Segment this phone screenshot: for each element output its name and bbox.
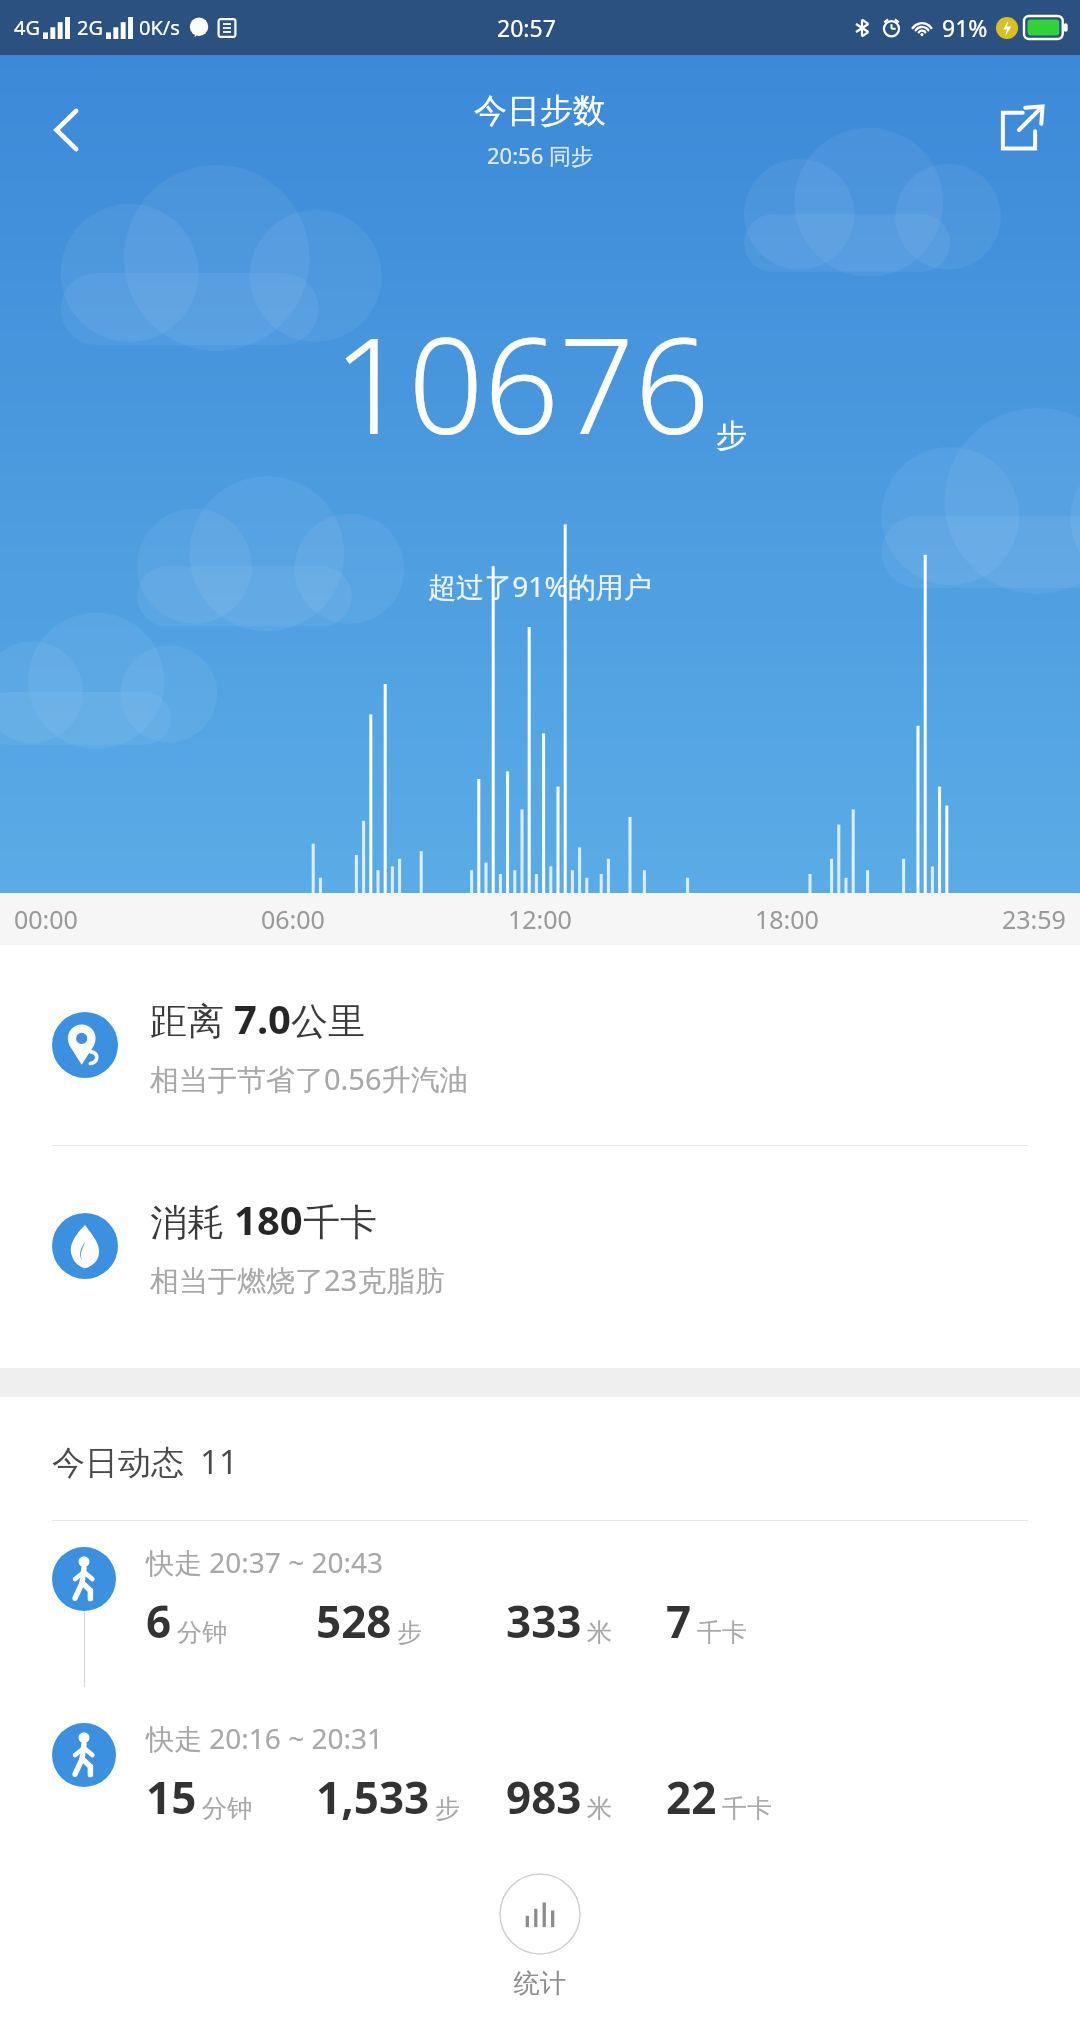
staticText: 20:57 <box>497 12 556 43</box>
staticText: 528 <box>316 1591 392 1651</box>
staticText: 相当于燃烧了23克脂肪 <box>150 1260 445 1300</box>
staticText: 10676 <box>333 293 710 473</box>
staticText: 步 <box>716 416 747 455</box>
staticText: 步 <box>435 1793 460 1824</box>
staticText: 00:00 <box>14 902 78 936</box>
staticText: 180 <box>234 1192 303 1246</box>
staticText: 超过了91%的用户 <box>428 567 652 605</box>
staticText: 7.0 <box>234 991 291 1045</box>
staticText: 20:56 同步 <box>487 140 593 170</box>
staticText: 4G <box>14 14 40 41</box>
staticText: 统计 <box>514 1967 566 2000</box>
staticText: 333 <box>506 1591 582 1651</box>
staticText: 22 <box>666 1767 717 1827</box>
staticText: 步 <box>397 1617 422 1648</box>
button[interactable]: 距离 <box>0 945 1080 1145</box>
staticText: 快走 20:37 ~ 20:43 <box>146 1543 383 1581</box>
button[interactable]: 统计 <box>440 1851 640 2021</box>
staticText: 23:59 <box>1002 902 1066 936</box>
staticText: 0K/s <box>139 14 180 41</box>
staticText: 分钟 <box>202 1793 252 1824</box>
staticText: 米 <box>587 1793 612 1824</box>
staticText: 18:00 <box>755 902 819 936</box>
staticText: 千卡 <box>303 1199 377 1246</box>
staticText: 12:00 <box>508 902 572 936</box>
staticText: 1,533 <box>316 1767 430 1827</box>
staticText: 7 <box>666 1591 692 1651</box>
button[interactable]: 消耗 <box>0 1146 1080 1346</box>
button[interactable]: 快走 20:37 ~ 20:43 <box>0 1521 1080 1697</box>
staticText: 983 <box>506 1767 582 1827</box>
staticText: 今日步数 <box>474 90 606 132</box>
staticText: 消耗 <box>150 1195 234 1246</box>
staticText: 千卡 <box>722 1793 772 1824</box>
staticText: 相当于节省了0.56升汽油 <box>150 1059 469 1099</box>
staticText: 千卡 <box>697 1617 747 1648</box>
staticText: 快走 20:16 ~ 20:31 <box>146 1719 383 1757</box>
staticText: 2G <box>77 14 103 41</box>
staticText: 分钟 <box>177 1617 227 1648</box>
button[interactable]: Back <box>34 96 102 164</box>
staticText: 公里 <box>291 998 365 1045</box>
staticText: 6 <box>146 1591 172 1651</box>
staticText: 11 <box>200 1439 238 1484</box>
staticText: 91% <box>942 12 988 43</box>
staticText: 距离 <box>150 994 234 1045</box>
button[interactable]: Share <box>988 99 1050 161</box>
staticText: 06:00 <box>261 902 325 936</box>
button[interactable]: 快走 20:16 ~ 20:31 <box>0 1697 1080 1873</box>
staticText: 15 <box>146 1767 197 1827</box>
staticText: 今日动态 <box>52 1442 184 1484</box>
staticText: 米 <box>587 1617 612 1648</box>
